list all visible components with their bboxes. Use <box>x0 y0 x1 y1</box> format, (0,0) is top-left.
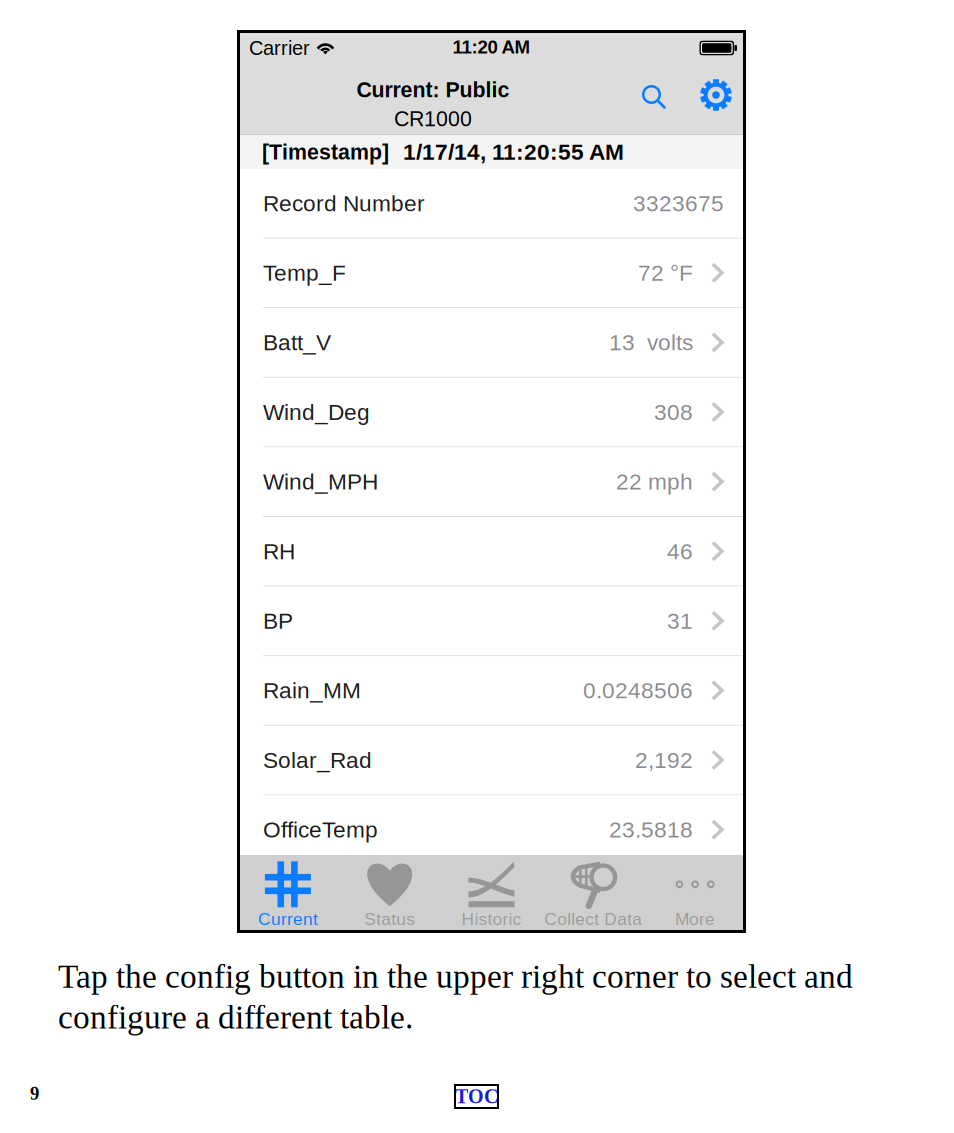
staticText: Wind_Deg <box>263 399 370 425</box>
button[interactable]: Wind_MPH <box>237 447 746 517</box>
button[interactable]: Collect Data <box>542 855 644 933</box>
button[interactable]: BP <box>237 587 746 656</box>
button[interactable]: Status <box>339 855 441 933</box>
staticText: 22 mph <box>616 469 693 494</box>
staticText: [Timestamp] <box>262 140 389 164</box>
button[interactable]: Wind_Deg <box>237 378 746 447</box>
staticText: 9 <box>30 1083 39 1104</box>
button[interactable]: Rain_MM <box>237 656 746 726</box>
staticText: Solar_Rad <box>263 747 372 773</box>
button[interactable]: More <box>644 855 746 933</box>
staticText: Record Number <box>263 191 425 216</box>
button[interactable]: Solar_Rad <box>237 726 746 795</box>
staticText: OfficeTemp <box>263 817 378 842</box>
staticText: Collect Data <box>544 909 642 929</box>
staticText: More <box>675 909 715 929</box>
staticText: CR1000 <box>394 107 472 131</box>
staticText: BP <box>263 608 293 633</box>
button[interactable]: Current <box>237 855 339 933</box>
button[interactable]: OfficeTemp <box>237 795 746 865</box>
staticText: RH <box>263 539 295 564</box>
staticText: 31 <box>667 608 693 633</box>
button[interactable]: TOC <box>454 1084 499 1109</box>
staticText: 46 <box>667 539 693 564</box>
staticText: Carrier <box>249 37 310 59</box>
button[interactable]: Search <box>635 73 677 117</box>
staticText: Historic <box>461 909 521 929</box>
button[interactable]: Record Number <box>237 169 746 239</box>
button[interactable]: Historic <box>441 855 542 933</box>
staticText: configure a different table. <box>58 999 413 1036</box>
staticText: Status <box>364 909 415 929</box>
staticText: Batt_V <box>263 330 331 355</box>
button[interactable]: Batt_V <box>237 308 746 378</box>
button[interactable]: Configure table <box>694 73 738 117</box>
staticText: 23.5818 <box>609 817 693 842</box>
staticText: 72 °F <box>638 260 693 285</box>
staticText: 0.0248506 <box>583 678 693 703</box>
staticText: Current <box>258 909 318 929</box>
staticText: 1/17/14, 11:20:55 AM <box>403 139 624 165</box>
button[interactable]: Temp_F <box>237 239 746 308</box>
button[interactable]: RH <box>237 517 746 587</box>
staticText: Rain_MM <box>263 678 361 703</box>
staticText: 13 volts <box>609 330 693 355</box>
staticText: Wind_MPH <box>263 469 378 494</box>
staticText: 308 <box>654 399 693 425</box>
staticText: 3323675 <box>633 191 724 216</box>
staticText: 2,192 <box>635 747 693 773</box>
staticText: Current: Public <box>356 78 509 102</box>
staticText: TOC <box>455 1085 498 1107</box>
staticText: Tap the config button in the upper right… <box>58 958 853 995</box>
staticText: Temp_F <box>263 260 346 285</box>
staticText: 11:20 AM <box>452 37 530 57</box>
